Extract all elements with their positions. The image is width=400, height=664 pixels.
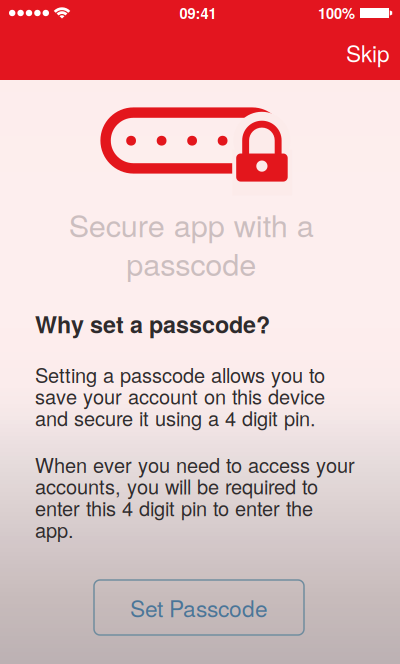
button[interactable]: Set Passcode xyxy=(94,580,304,635)
staticText: Setting a passcode allows you to save yo… xyxy=(35,360,325,432)
staticText: Why set a passcode? xyxy=(35,307,270,340)
staticText: Skip xyxy=(346,36,390,69)
staticText: Set Passcode xyxy=(130,591,268,624)
button[interactable]: Skip xyxy=(336,27,400,78)
staticText: 100% xyxy=(318,2,355,23)
staticText: When ever you need to access your accoun… xyxy=(35,450,355,544)
staticText: Secure app with a passcode xyxy=(68,202,313,285)
staticText: 09:41 xyxy=(179,2,216,23)
